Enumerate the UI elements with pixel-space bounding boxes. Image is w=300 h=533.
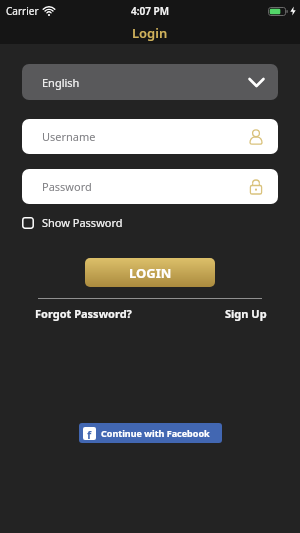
button[interactable]: English — [22, 64, 278, 100]
staticText: Sign Up — [225, 306, 267, 321]
staticText: Login — [132, 24, 168, 42]
button[interactable]: Password — [22, 169, 278, 204]
button[interactable]: Show Password — [22, 215, 123, 230]
staticText: Show Password — [42, 215, 123, 230]
staticText: English — [42, 75, 80, 90]
button[interactable]: LOGIN — [85, 258, 215, 287]
button[interactable]: f — [79, 423, 222, 443]
button[interactable]: Forgot Password? — [35, 306, 132, 321]
button[interactable]: Sign Up — [225, 306, 267, 321]
staticText: Password — [42, 179, 92, 194]
staticText: f — [87, 427, 92, 440]
staticText: Username — [42, 129, 96, 144]
staticText: Forgot Password? — [35, 306, 132, 321]
button[interactable]: Username — [22, 119, 278, 154]
staticText: LOGIN — [129, 264, 172, 282]
staticText: Continue with Facebook — [101, 427, 210, 439]
staticText: 4:07 PM — [131, 4, 169, 18]
staticText: Carrier — [6, 4, 39, 18]
